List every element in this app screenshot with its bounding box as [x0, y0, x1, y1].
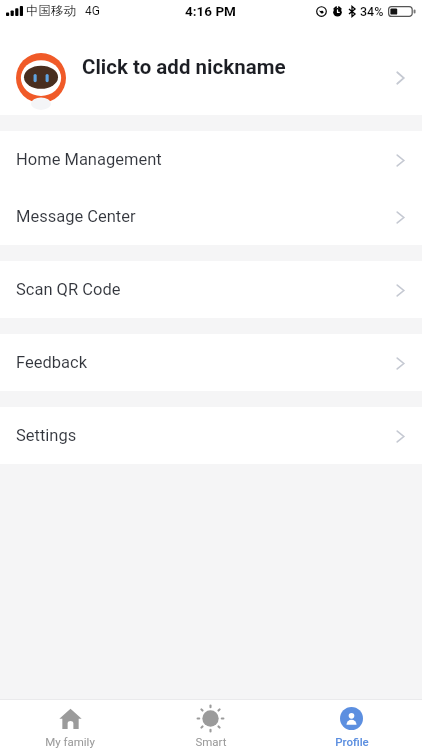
- staticText: 中国移动: [26, 3, 76, 19]
- button[interactable]: Profile: [281, 700, 422, 750]
- button[interactable]: Click to add nickname: [0, 22, 422, 115]
- button[interactable]: Smart: [140, 700, 281, 750]
- button[interactable]: Settings: [0, 407, 422, 464]
- staticText: Click to add nickname: [82, 55, 286, 79]
- staticText: Home Management: [16, 150, 162, 169]
- button[interactable]: Message Center: [0, 188, 422, 245]
- staticText: Scan QR Code: [16, 280, 121, 299]
- staticText: Smart: [195, 735, 227, 748]
- staticText: 34%: [360, 4, 384, 19]
- button[interactable]: My family: [0, 700, 140, 750]
- button[interactable]: Feedback: [0, 334, 422, 391]
- staticText: Feedback: [16, 353, 87, 372]
- button[interactable]: Home Management: [0, 131, 422, 188]
- staticText: Profile: [335, 735, 369, 748]
- staticText: 4G: [85, 4, 100, 18]
- staticText: Message Center: [16, 207, 136, 226]
- staticText: Settings: [16, 426, 77, 445]
- button[interactable]: Scan QR Code: [0, 261, 422, 318]
- staticText: My family: [45, 735, 95, 748]
- staticText: 4:16 PM: [185, 3, 236, 19]
